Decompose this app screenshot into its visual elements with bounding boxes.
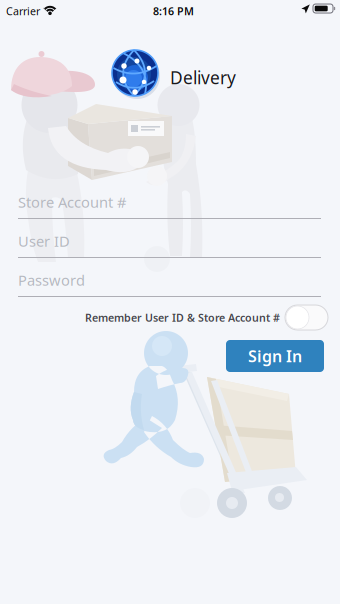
- staticText: Delivery: [170, 66, 236, 89]
- staticText: User ID: [18, 231, 70, 251]
- button[interactable]: Remember User ID & Store Account #: [85, 305, 328, 330]
- staticText: 8:16 PM: [153, 4, 194, 18]
- button[interactable]: Sign In: [226, 340, 324, 372]
- staticText: Password: [18, 270, 85, 290]
- staticText: Remember User ID & Store Account #: [85, 310, 280, 325]
- staticText: Carrier: [6, 4, 40, 18]
- staticText: Sign In: [248, 345, 302, 367]
- staticText: Store Account #: [18, 192, 126, 212]
